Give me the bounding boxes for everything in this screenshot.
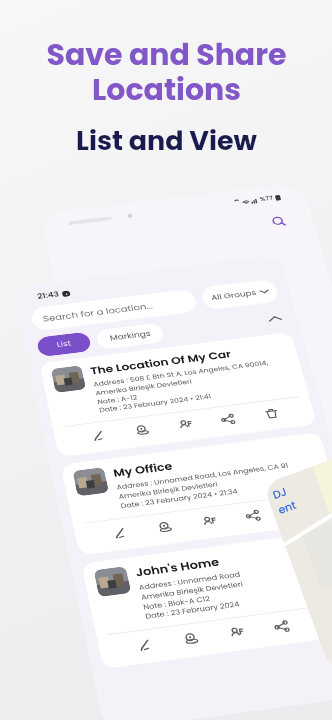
staticText: All Groups (210, 288, 258, 303)
staticText: List (56, 338, 73, 350)
staticText: Note : A-12 (96, 393, 138, 406)
button[interactable]: Navigate (128, 419, 155, 440)
staticText: Note : Blok-A C12 (142, 594, 211, 611)
button[interactable]: Navigate (176, 626, 205, 650)
button[interactable]: Edit (105, 522, 133, 544)
staticText: %77 (259, 194, 274, 203)
staticText: Search for a location... (42, 300, 154, 324)
staticText: Save and Share Locations (46, 34, 287, 110)
button[interactable]: Delete (313, 608, 332, 631)
staticText: Address : Unnamed Road Amerika Birleşik … (138, 569, 244, 602)
button[interactable]: Search (265, 211, 293, 232)
button[interactable]: Share contact (222, 620, 250, 644)
staticText: Date : 23 February 2024 • 21:41 (98, 392, 212, 414)
staticText: DJ ent (270, 481, 299, 518)
button[interactable]: Search for a location... (30, 288, 198, 331)
button[interactable]: Navigate (151, 516, 178, 538)
staticText: Markings (109, 328, 152, 344)
staticText: List and View (76, 122, 257, 160)
button[interactable]: Markings (95, 322, 165, 350)
button[interactable]: Edit (84, 425, 111, 446)
button[interactable]: Share contact (171, 414, 198, 435)
button[interactable]: Collapse (263, 310, 287, 328)
staticText: Date : 23 February 2024 • 21:34 (120, 486, 238, 510)
button[interactable]: Share (267, 614, 296, 638)
button[interactable]: Share (214, 408, 241, 429)
staticText: 21:43 (36, 289, 60, 302)
button[interactable]: Share (238, 504, 266, 526)
staticText: The Location Of My Car (89, 347, 233, 378)
button[interactable]: Share contact (195, 510, 222, 532)
button[interactable]: Delete (283, 498, 311, 520)
staticText: Address : Unnamed Road, Los Angeles, CA … (116, 461, 292, 501)
staticText: John's Home (134, 554, 221, 580)
button[interactable]: Delete (257, 403, 285, 424)
staticText: Date : 23 February 2024 (144, 599, 241, 621)
button[interactable]: List (36, 331, 92, 357)
staticText: Address : 508 E 8th St A, Los Angeles, C… (93, 358, 272, 398)
button[interactable]: Edit (130, 633, 158, 656)
button[interactable]: All Groups (199, 279, 280, 310)
staticText: My Office (112, 458, 174, 480)
